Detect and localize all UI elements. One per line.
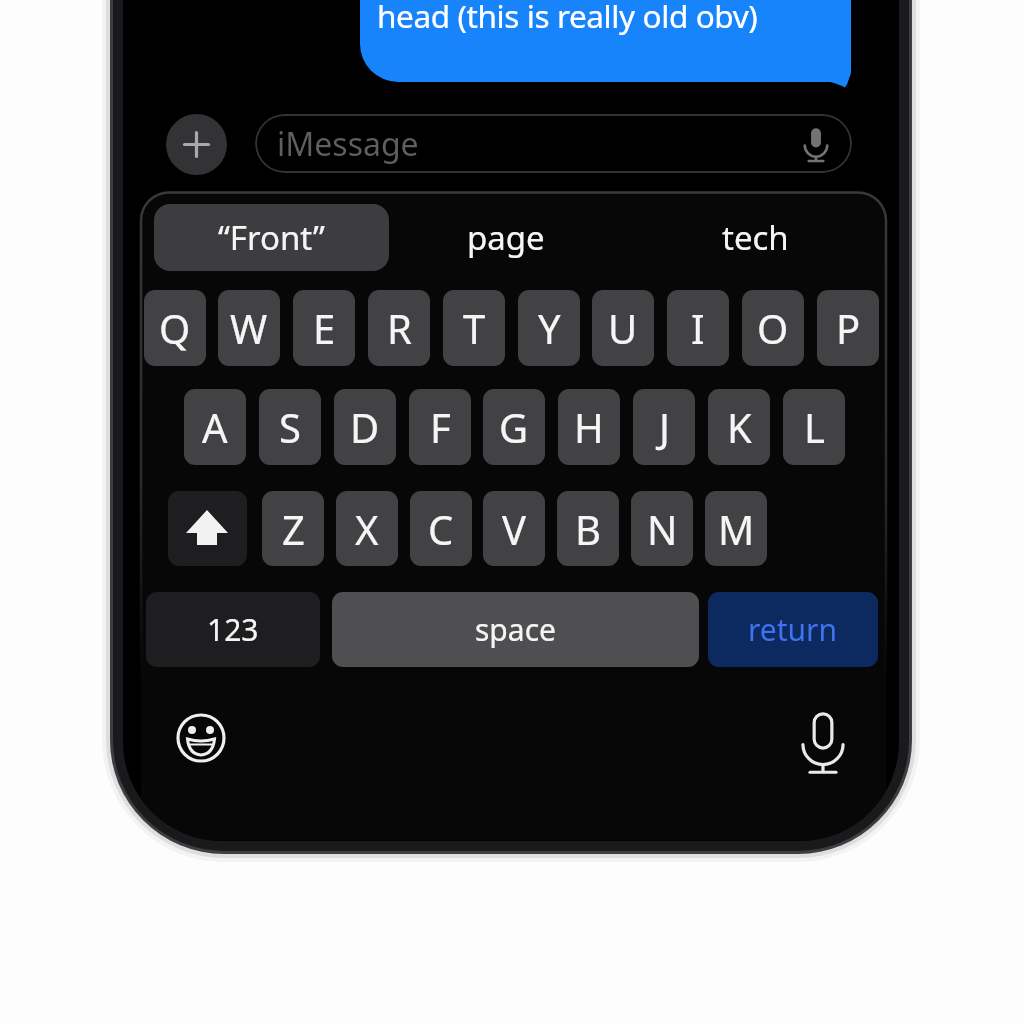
button[interactable]: X (336, 491, 398, 566)
staticText: T (463, 301, 486, 355)
button[interactable]: 123 (146, 592, 320, 667)
button[interactable]: O (742, 290, 804, 366)
button[interactable]: P (817, 290, 879, 366)
button[interactable] (166, 114, 227, 175)
button[interactable]: M (705, 491, 767, 566)
button[interactable] (168, 491, 247, 566)
staticText: iMessage (277, 122, 419, 166)
button[interactable]: S (259, 389, 321, 465)
staticText: N (647, 502, 678, 556)
staticText: I (691, 301, 705, 355)
button[interactable]: Y (518, 290, 580, 366)
button[interactable]: E (293, 290, 355, 366)
staticText: Q (159, 301, 191, 355)
staticText: V (502, 502, 526, 556)
button[interactable]: R (368, 290, 430, 366)
staticText: M (718, 502, 755, 556)
button[interactable]: W (218, 290, 280, 366)
button[interactable]: N (631, 491, 693, 566)
button[interactable]: K (708, 389, 770, 465)
button[interactable]: V (483, 491, 545, 566)
button[interactable]: “Front” (154, 204, 389, 271)
button[interactable]: B (557, 491, 619, 566)
staticText: Y (538, 301, 561, 355)
button[interactable]: space (332, 592, 699, 667)
staticText: tech (722, 215, 789, 260)
staticText: 123 (207, 609, 259, 650)
button[interactable]: page (426, 204, 586, 271)
button[interactable]: T (443, 290, 505, 366)
staticText: K (727, 400, 752, 454)
staticText: L (804, 400, 825, 454)
staticText: D (350, 400, 380, 454)
button[interactable]: U (592, 290, 654, 366)
button[interactable]: Q (144, 290, 206, 366)
staticText: H (574, 400, 604, 454)
button[interactable]: J (633, 389, 695, 465)
staticText: R (387, 301, 412, 355)
button[interactable]: A (184, 389, 246, 465)
staticText: Z (282, 502, 305, 556)
button[interactable]: F (409, 389, 471, 465)
staticText: O (757, 301, 789, 355)
button[interactable]: Z (262, 491, 324, 566)
staticText: S (279, 400, 301, 454)
button[interactable]: C (410, 491, 472, 566)
staticText: A (202, 400, 228, 454)
button[interactable]: I (667, 290, 729, 366)
button[interactable]: H (558, 389, 620, 465)
staticText: G (499, 400, 529, 454)
staticText: space (475, 609, 556, 650)
staticText: J (659, 400, 670, 454)
button[interactable]: G (483, 389, 545, 465)
staticText: “Front” (218, 215, 325, 260)
staticText: C (428, 502, 454, 556)
staticText: U (608, 301, 638, 355)
staticText: head (this is really old obv) (377, 0, 758, 37)
staticText: E (313, 301, 336, 355)
staticText: P (836, 301, 861, 355)
staticText: return (748, 609, 838, 650)
staticText: page (467, 215, 545, 260)
button[interactable]: tech (675, 204, 835, 271)
staticText: X (355, 502, 379, 556)
button[interactable]: return (708, 592, 878, 667)
staticText: W (230, 301, 268, 355)
staticText: B (575, 502, 601, 556)
staticText: F (430, 400, 451, 454)
button[interactable]: iMessage (255, 114, 852, 173)
button[interactable]: L (783, 389, 845, 465)
button[interactable]: D (334, 389, 396, 465)
